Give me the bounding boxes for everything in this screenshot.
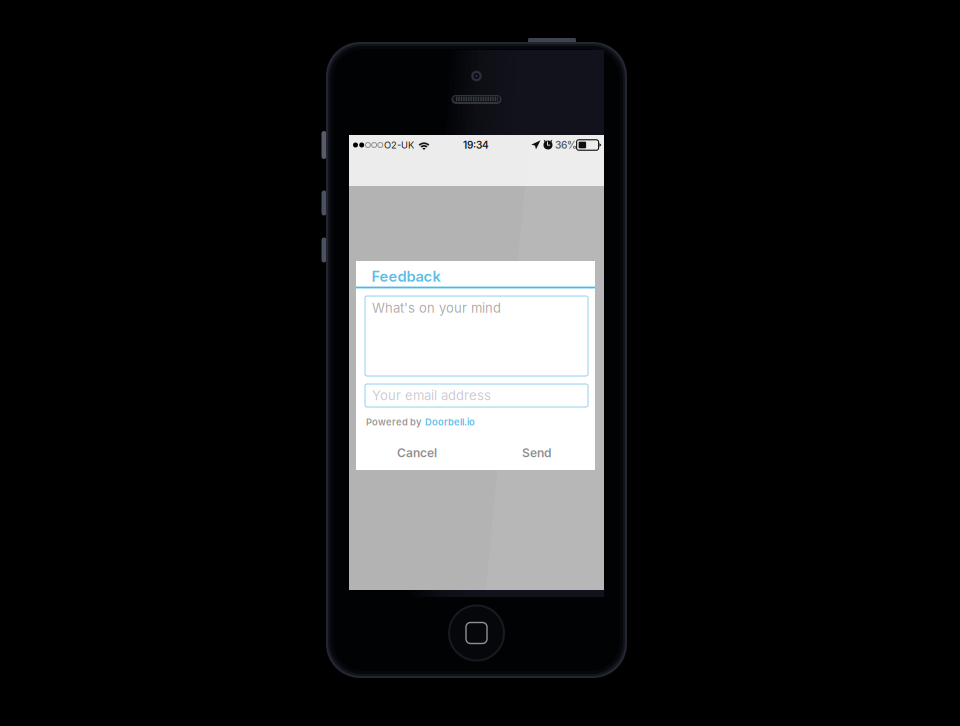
button[interactable]: Cancel [367, 438, 467, 468]
staticText: O2-UK [384, 139, 414, 151]
staticText: 36% [555, 139, 577, 151]
staticText: What's on your mind [372, 300, 501, 316]
staticText: Doorbell.io [425, 416, 475, 428]
staticText: Feedback [371, 268, 440, 285]
staticText: Your email address [372, 388, 491, 403]
button[interactable]: Doorbell.io [425, 416, 475, 428]
button[interactable]: Send [491, 438, 581, 468]
staticText: 19:34 [463, 139, 489, 151]
staticText: Send [522, 446, 551, 460]
staticText: Powered by [366, 416, 421, 428]
staticText: Cancel [397, 446, 437, 460]
